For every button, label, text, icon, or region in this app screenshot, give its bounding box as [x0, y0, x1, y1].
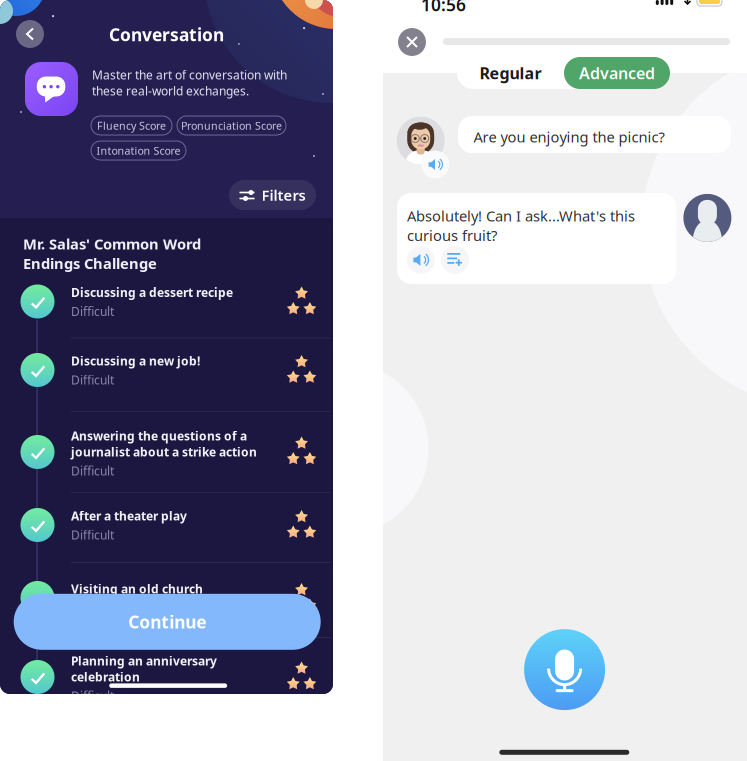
button[interactable]: Close [393, 23, 431, 61]
button[interactable]: Record [524, 629, 605, 710]
button[interactable]: Discussing a dessert recipe [0, 284, 333, 318]
staticText: Difficult [71, 527, 114, 543]
staticText: 10:56 [421, 0, 466, 16]
button[interactable]: Answering the questions of a journalist … [0, 428, 333, 475]
staticText: Difficult [71, 463, 114, 479]
staticText: Pronunciation Score [181, 118, 282, 133]
staticText: Answering the questions of a journalist … [71, 428, 257, 460]
staticText: Intonation Score [96, 143, 180, 158]
staticText: Master the art of conversation with thes… [92, 67, 287, 99]
button[interactable]: Advanced [564, 57, 670, 89]
staticText: Discussing a dessert recipe [71, 284, 233, 300]
staticText: Filters [261, 185, 305, 205]
button[interactable]: Filters [229, 180, 316, 210]
button[interactable]: After a theater play [0, 508, 333, 542]
button[interactable]: Play audio [407, 246, 435, 274]
staticText: Planning an anniversary celebration [71, 653, 217, 685]
button[interactable]: Continue [14, 594, 321, 650]
button[interactable]: Back [10, 14, 50, 54]
staticText: Regular [479, 62, 541, 84]
button[interactable]: Visiting an old church [0, 581, 333, 615]
staticText: Advanced [579, 62, 655, 84]
staticText: Visiting an old church [71, 581, 203, 597]
staticText: After a theater play [71, 508, 187, 524]
staticText: Fluency Score [97, 118, 166, 133]
staticText: Conversation [109, 23, 224, 46]
button[interactable]: Planning an anniversary celebration [0, 653, 333, 700]
staticText: Are you enjoying the picnic? [473, 127, 664, 146]
staticText: Difficult [71, 372, 114, 388]
staticText: Mr. Salas' Common Word Endings Challenge [23, 234, 201, 273]
staticText: Discussing a new job! [71, 353, 200, 369]
button[interactable]: Regular [457, 57, 564, 89]
button[interactable]: Discussing a new job! [0, 353, 333, 387]
staticText: Absolutely! Can I ask...What's this curi… [407, 206, 635, 245]
staticText: Difficult [71, 303, 114, 319]
staticText: Continue [128, 610, 206, 633]
button[interactable]: Add to notes [441, 246, 469, 274]
staticText: Difficult [71, 688, 114, 704]
